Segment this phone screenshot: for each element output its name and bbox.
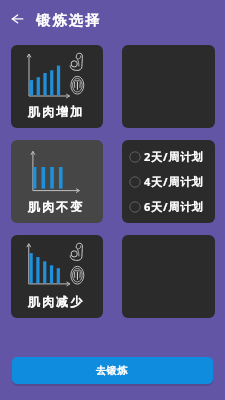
staticText: 2天/周计划 bbox=[144, 149, 204, 164]
staticText: 4天/周计划 bbox=[144, 174, 204, 189]
button[interactable]: Back bbox=[2, 8, 24, 32]
button[interactable]: Option card bbox=[122, 45, 215, 128]
button[interactable]: 肌肉减少 bbox=[11, 235, 103, 318]
staticText: 肌肉不变 bbox=[27, 199, 83, 214]
button[interactable]: 6天/周计划 bbox=[122, 199, 215, 214]
button[interactable]: 肌肉增加 bbox=[11, 45, 103, 128]
staticText: 锻炼选择 bbox=[36, 12, 102, 30]
button[interactable]: Option card 2 bbox=[122, 235, 215, 318]
staticText: 肌肉增加 bbox=[27, 104, 83, 119]
staticText: 去锻炼 bbox=[96, 364, 128, 377]
button[interactable]: 4天/周计划 bbox=[122, 174, 215, 189]
button[interactable]: 肌肉不变 bbox=[11, 140, 103, 223]
button[interactable]: 去锻炼 bbox=[12, 357, 213, 384]
button[interactable]: 2天/周计划 bbox=[122, 149, 215, 164]
staticText: 6天/周计划 bbox=[144, 199, 204, 214]
staticText: 肌肉减少 bbox=[27, 294, 83, 309]
